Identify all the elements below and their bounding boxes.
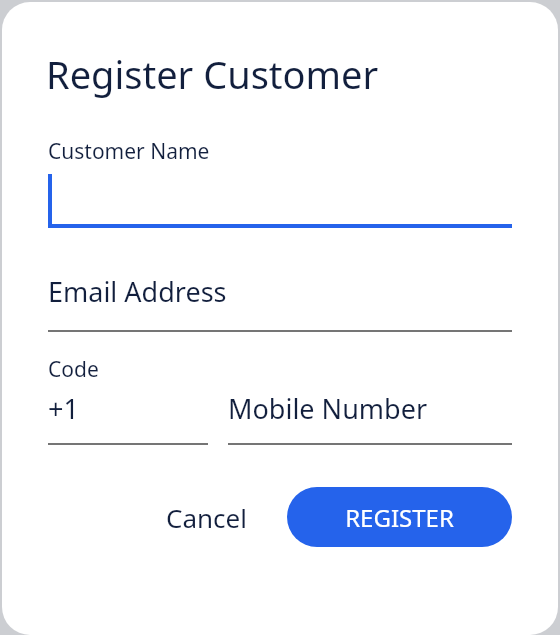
staticText: Customer Name [48, 137, 210, 166]
staticText: Email Address [48, 273, 227, 310]
staticText: Register Customer [46, 48, 379, 100]
staticText: REGISTER [345, 501, 454, 534]
staticText: Cancel [166, 500, 247, 535]
button[interactable]: Customer Name [48, 137, 512, 228]
staticText: Code [48, 355, 99, 384]
staticText: +1 [48, 390, 79, 427]
button[interactable]: Email Address [48, 273, 512, 332]
button[interactable]: Mobile Number [228, 390, 512, 445]
button[interactable]: Code [48, 355, 208, 445]
button[interactable]: Cancel [152, 488, 261, 547]
button[interactable]: REGISTER [287, 487, 512, 547]
staticText: Mobile Number [228, 390, 428, 427]
